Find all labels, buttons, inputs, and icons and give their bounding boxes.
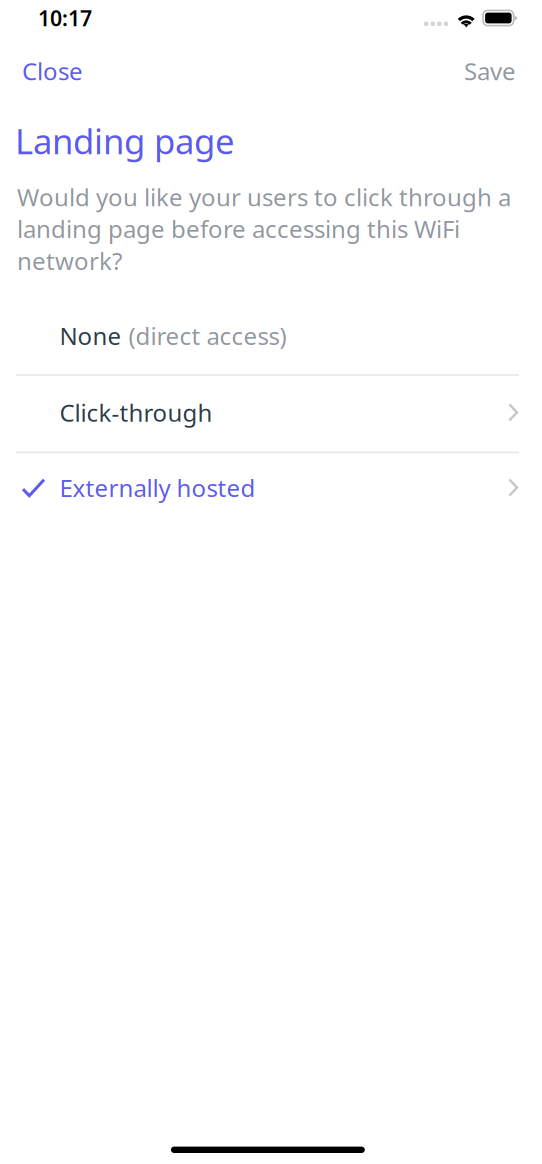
staticText: None: [59, 320, 121, 352]
staticText: Close: [22, 55, 83, 87]
staticText: Click-through: [59, 397, 212, 428]
staticText: (direct access): [128, 320, 286, 352]
staticText: Externally hosted: [59, 472, 255, 504]
button[interactable]: Externally hosted: [0, 453, 542, 529]
staticText: 10:17: [38, 4, 92, 32]
button[interactable]: Click-through: [0, 376, 542, 452]
button[interactable]: Save: [450, 46, 542, 96]
staticText: Landing page: [15, 118, 235, 164]
staticText: Would you like your users to click throu…: [17, 181, 511, 276]
button[interactable]: None: [0, 298, 542, 374]
staticText: Save: [464, 55, 516, 87]
button[interactable]: Close: [0, 46, 97, 96]
